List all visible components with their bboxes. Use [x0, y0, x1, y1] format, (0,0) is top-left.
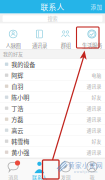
- button[interactable]: 方磊: [0, 114, 105, 125]
- staticText: 生活服务: [82, 42, 102, 49]
- button[interactable]: 人脉圈: [0, 24, 26, 49]
- staticText: 发现: [61, 173, 71, 180]
- button[interactable]: 发现: [52, 158, 79, 180]
- staticText: 我的好友: [3, 50, 23, 57]
- button[interactable]: 丁浩: [0, 103, 105, 114]
- button[interactable]: 高云: [0, 125, 105, 136]
- staticText: 我: [89, 173, 94, 180]
- staticText: 搜索: [47, 15, 57, 22]
- button[interactable]: 消息: [0, 158, 26, 180]
- button[interactable]: 生活服务: [79, 24, 105, 49]
- staticText: 黄小强: [11, 148, 29, 157]
- staticText: 消息: [8, 173, 18, 180]
- staticText: 好友: [92, 94, 102, 101]
- staticText: 电脑: [92, 72, 102, 79]
- button[interactable]: 我的设备: [0, 59, 105, 70]
- button[interactable]: 白羽: [0, 81, 105, 92]
- staticText: 我的设备: [11, 60, 35, 69]
- staticText: 通讯录: [32, 42, 47, 49]
- staticText: www.hjxx.com: [74, 170, 98, 174]
- button[interactable]: 黄小强: [0, 147, 105, 158]
- staticText: 丁浩: [11, 104, 23, 113]
- staticText: 通讯录: [87, 116, 102, 123]
- staticText: 添加: [90, 3, 102, 11]
- staticText: 韩雪梅: [11, 137, 29, 146]
- button[interactable]: 陈小明: [0, 92, 105, 103]
- staticText: 黄家小侠网: [68, 160, 103, 170]
- staticText: 陈小明: [11, 93, 29, 102]
- staticText: 联系人: [40, 1, 64, 12]
- staticText: 阿辉: [11, 71, 23, 80]
- staticText: 通讯录: [87, 127, 102, 134]
- button[interactable]: 群组: [52, 24, 79, 49]
- staticText: 白羽: [11, 82, 23, 91]
- staticText: 方磊: [11, 115, 23, 124]
- button[interactable]: 韩雪梅: [0, 136, 105, 147]
- staticText: 通讯录: [87, 83, 102, 90]
- button[interactable]: 我: [79, 158, 105, 180]
- button[interactable]: 添加: [90, 3, 105, 11]
- staticText: 高云: [11, 126, 23, 135]
- staticText: 人脉圈: [6, 42, 21, 49]
- button[interactable]: 联系人: [26, 158, 53, 180]
- button[interactable]: 搜索: [0, 14, 105, 24]
- staticText: 通讯录: [87, 105, 102, 112]
- button[interactable]: 阿辉: [0, 70, 105, 81]
- button[interactable]: 通讯录: [26, 24, 53, 49]
- staticText: 通讯录: [87, 149, 102, 156]
- staticText: 好友: [92, 138, 102, 145]
- staticText: 联系人: [32, 173, 47, 180]
- staticText: 群组: [61, 42, 71, 49]
